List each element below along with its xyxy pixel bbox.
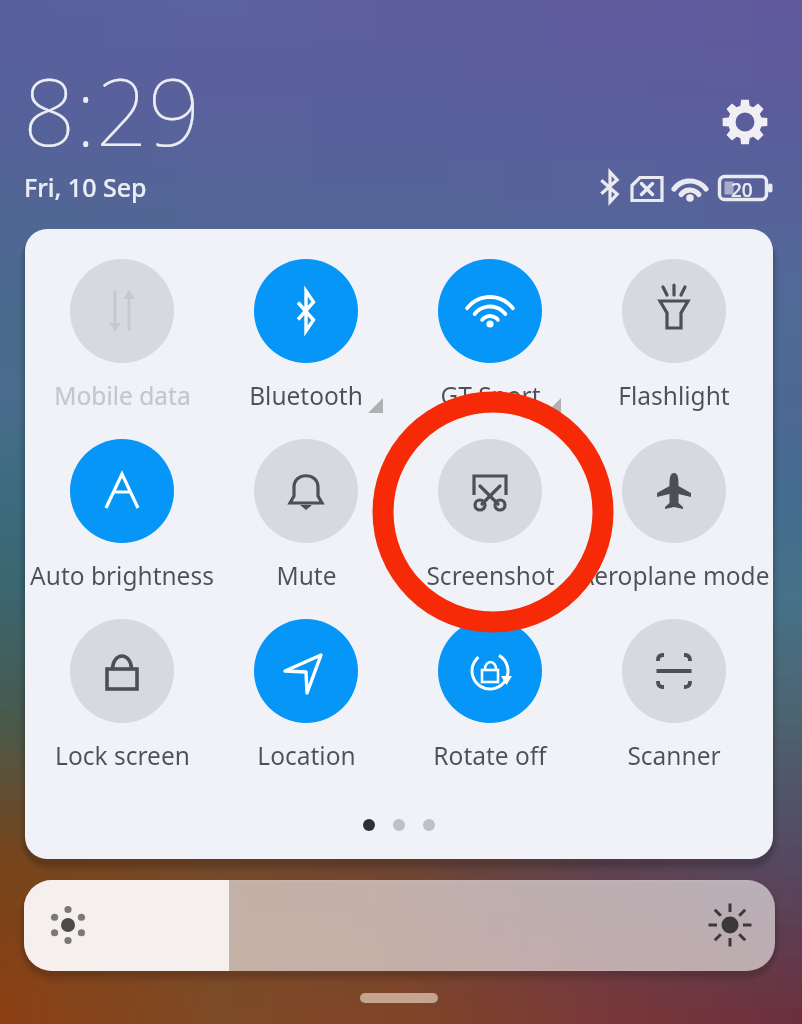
button[interactable] [582, 259, 766, 375]
button[interactable] [214, 259, 398, 375]
staticText: 20 [731, 177, 753, 203]
staticText: GT Sport [440, 379, 541, 412]
button[interactable] [398, 619, 582, 735]
staticText: Flashlight [618, 379, 730, 412]
staticText: Location [257, 739, 356, 772]
button[interactable] [214, 619, 398, 735]
button[interactable] [398, 439, 582, 555]
staticText: Aeroplane mode [578, 559, 770, 592]
button[interactable] [30, 619, 214, 735]
button[interactable] [582, 439, 766, 555]
button[interactable]: Brightness [24, 880, 775, 971]
staticText: Mute [276, 559, 337, 592]
button[interactable] [30, 439, 214, 555]
button[interactable] [214, 439, 398, 555]
staticText: Lock screen [55, 739, 190, 772]
button[interactable] [398, 259, 582, 375]
staticText: Fri, 10 Sep [24, 170, 147, 204]
staticText: Scanner [627, 739, 721, 772]
button[interactable] [30, 259, 214, 375]
staticText: 8:29 [23, 48, 201, 173]
button[interactable] [582, 619, 766, 735]
button[interactable]: Settings [718, 95, 772, 149]
staticText: Rotate off [433, 739, 547, 772]
staticText: Bluetooth [249, 379, 363, 412]
staticText: Screenshot [426, 559, 555, 592]
staticText: Auto brightness [30, 559, 214, 592]
staticText: Mobile data [54, 379, 191, 412]
